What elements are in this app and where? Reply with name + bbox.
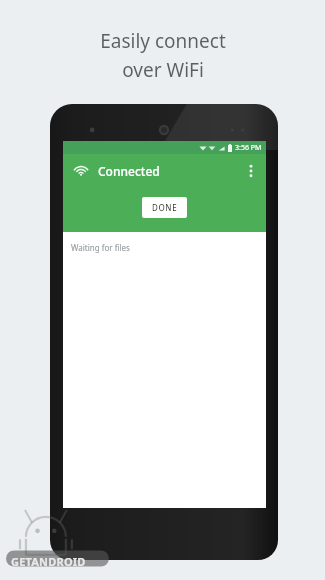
staticText: Waiting for files: [71, 242, 130, 253]
staticText: over WiFi: [122, 57, 204, 83]
staticText: Easily connect: [100, 28, 226, 54]
button[interactable]: More options: [239, 159, 263, 183]
button[interactable]: WiFi connected: [70, 160, 92, 182]
staticText: 3:56 PM: [235, 143, 262, 153]
staticText: DONE: [152, 202, 178, 213]
staticText: Connected: [98, 163, 160, 179]
staticText: GETANDROID: [11, 554, 86, 569]
button[interactable]: DONE: [142, 197, 187, 218]
